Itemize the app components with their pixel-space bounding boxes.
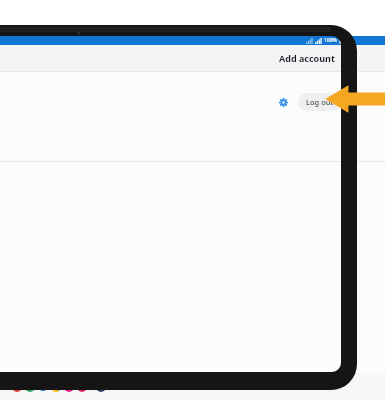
staticText: Log out xyxy=(306,97,334,107)
button[interactable]: Log out xyxy=(298,93,342,111)
button[interactable]: Photos xyxy=(62,380,75,393)
button[interactable]: Camera xyxy=(75,380,88,393)
button[interactable]: Add account xyxy=(275,49,339,67)
button[interactable]: Home xyxy=(283,373,311,400)
button[interactable]: Recents xyxy=(255,373,283,400)
button[interactable]: Keep xyxy=(10,380,23,393)
staticText: Add account xyxy=(279,52,335,64)
staticText: 100% xyxy=(324,37,337,44)
button[interactable]: Settings app xyxy=(94,380,107,393)
button[interactable]: Back xyxy=(311,373,339,400)
button[interactable]: Chrome xyxy=(49,380,62,393)
button[interactable]: Chat xyxy=(36,380,49,393)
button[interactable]: Messages xyxy=(23,380,36,393)
button[interactable]: Settings xyxy=(275,94,291,110)
